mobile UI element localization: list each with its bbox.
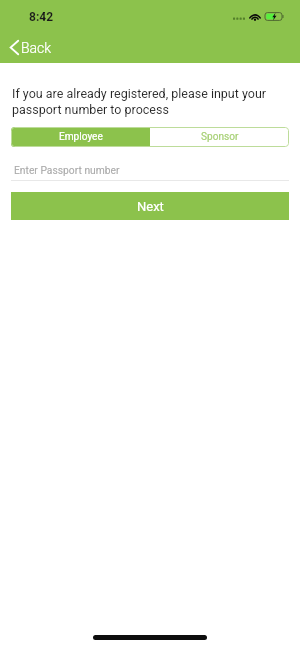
other: Wi-Fi [250, 12, 260, 21]
button[interactable]: Back [0, 32, 64, 63]
other: Cellular signal [233, 13, 245, 21]
staticText: Employee [59, 131, 103, 143]
staticText: Next [137, 199, 164, 214]
staticText: Sponsor [201, 131, 239, 143]
button[interactable]: Employee [11, 127, 150, 147]
staticText: Back [21, 40, 52, 56]
button[interactable]: Enter Passport number [14, 160, 288, 180]
other: Battery charging [265, 12, 284, 21]
staticText: Enter Passport number [14, 164, 120, 176]
staticText: 8:42 [29, 10, 54, 24]
button[interactable]: Sponsor [150, 127, 289, 147]
button[interactable]: Next [11, 192, 289, 220]
staticText: If you are already registered, please in… [12, 86, 288, 117]
